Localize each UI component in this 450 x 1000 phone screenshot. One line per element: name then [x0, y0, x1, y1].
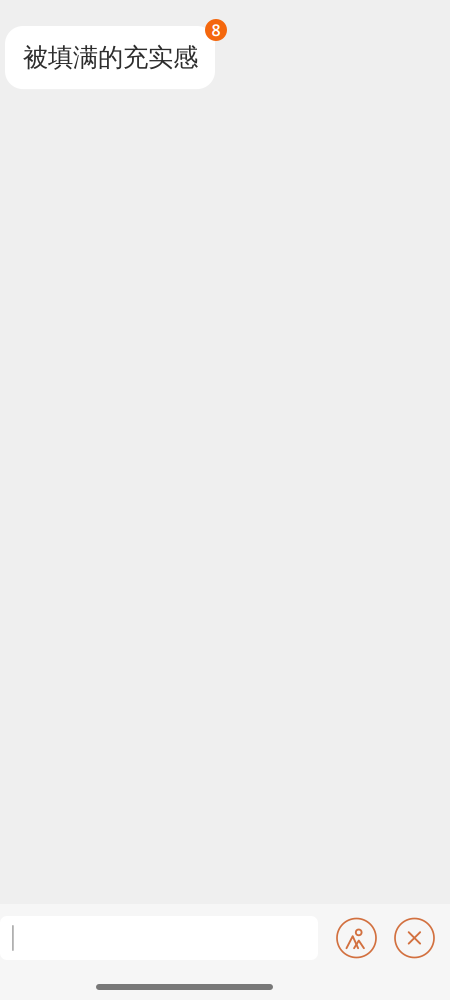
- staticText: 8: [211, 19, 220, 41]
- button[interactable]: Add photo: [337, 918, 376, 957]
- button[interactable]: Close: [395, 918, 434, 957]
- staticText: 被填满的充实感: [23, 42, 198, 73]
- button[interactable]: Message field: [0, 916, 318, 960]
- button[interactable]: 被填满的充实感: [5, 26, 215, 89]
